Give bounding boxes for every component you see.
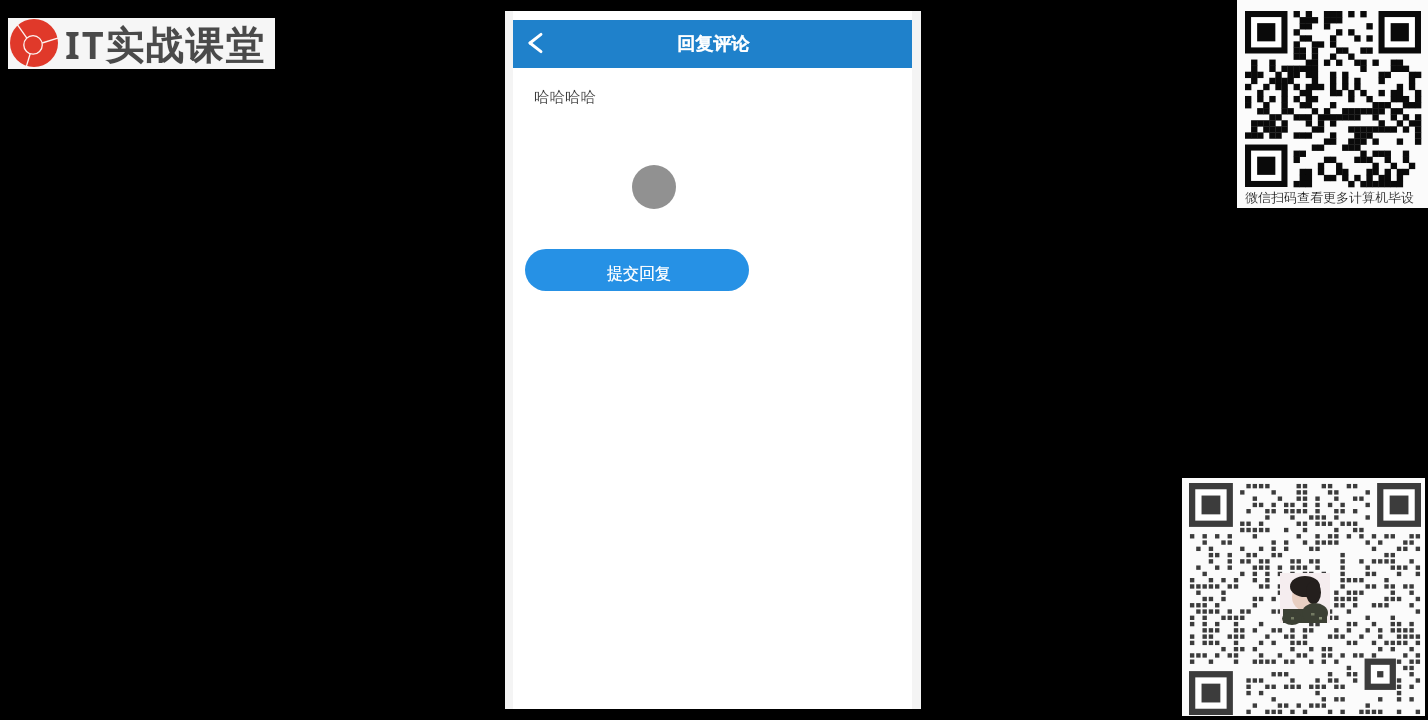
staticText: 提交回复 — [607, 264, 671, 284]
button[interactable]: Add image — [632, 165, 676, 209]
button[interactable]: Back — [513, 20, 561, 68]
button[interactable]: 提交回复 — [525, 249, 749, 291]
staticText: 哈哈哈哈 — [534, 87, 596, 107]
staticText: 微信扫码查看更多计算机毕设 — [1245, 189, 1414, 205]
staticText: 回复评论 — [677, 33, 749, 56]
staticText: IT实战课堂 — [65, 18, 266, 69]
